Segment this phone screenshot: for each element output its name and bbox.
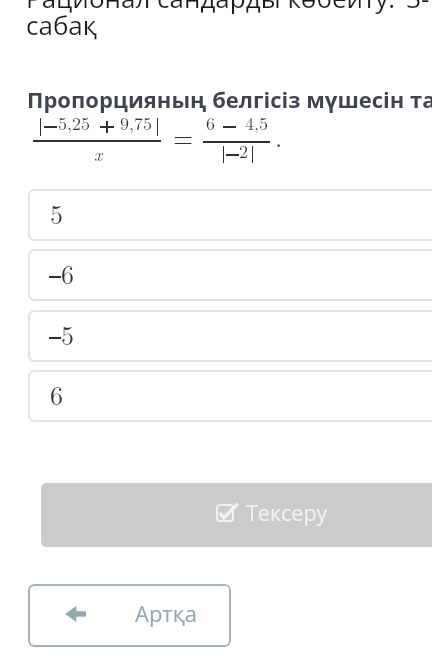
button[interactable]: 5 bbox=[28, 189, 432, 241]
staticText: Пропорцияның белгісіз мүшесін тап. bbox=[27, 84, 432, 114]
staticText: 4,5 bbox=[245, 110, 269, 136]
button[interactable]: Тексеру bbox=[41, 483, 432, 547]
staticText: 6 bbox=[61, 255, 75, 292]
other: Артқа bbox=[65, 606, 86, 622]
staticText: 5 bbox=[50, 195, 64, 232]
staticText: 2 bbox=[239, 138, 248, 164]
staticText: . bbox=[275, 118, 283, 155]
staticText: = bbox=[173, 118, 194, 155]
staticText: 9,75 bbox=[120, 110, 153, 136]
staticText: 6 bbox=[206, 110, 215, 136]
button[interactable]: 6 bbox=[28, 249, 432, 301]
button[interactable]: 5 bbox=[28, 310, 432, 362]
staticText: 5 bbox=[61, 316, 75, 353]
staticText: x bbox=[94, 141, 103, 166]
staticText: Рационал сандарды көбейту. 3- сабақ bbox=[26, 0, 432, 43]
other: Тексеру bbox=[216, 504, 234, 522]
staticText: Тексеру bbox=[246, 498, 328, 527]
staticText: Артқа bbox=[135, 598, 197, 628]
staticText: 5,25 bbox=[58, 110, 91, 136]
button[interactable]: Артқа bbox=[28, 584, 231, 647]
button[interactable]: 6 bbox=[28, 370, 432, 422]
staticText: 6 bbox=[50, 376, 64, 413]
